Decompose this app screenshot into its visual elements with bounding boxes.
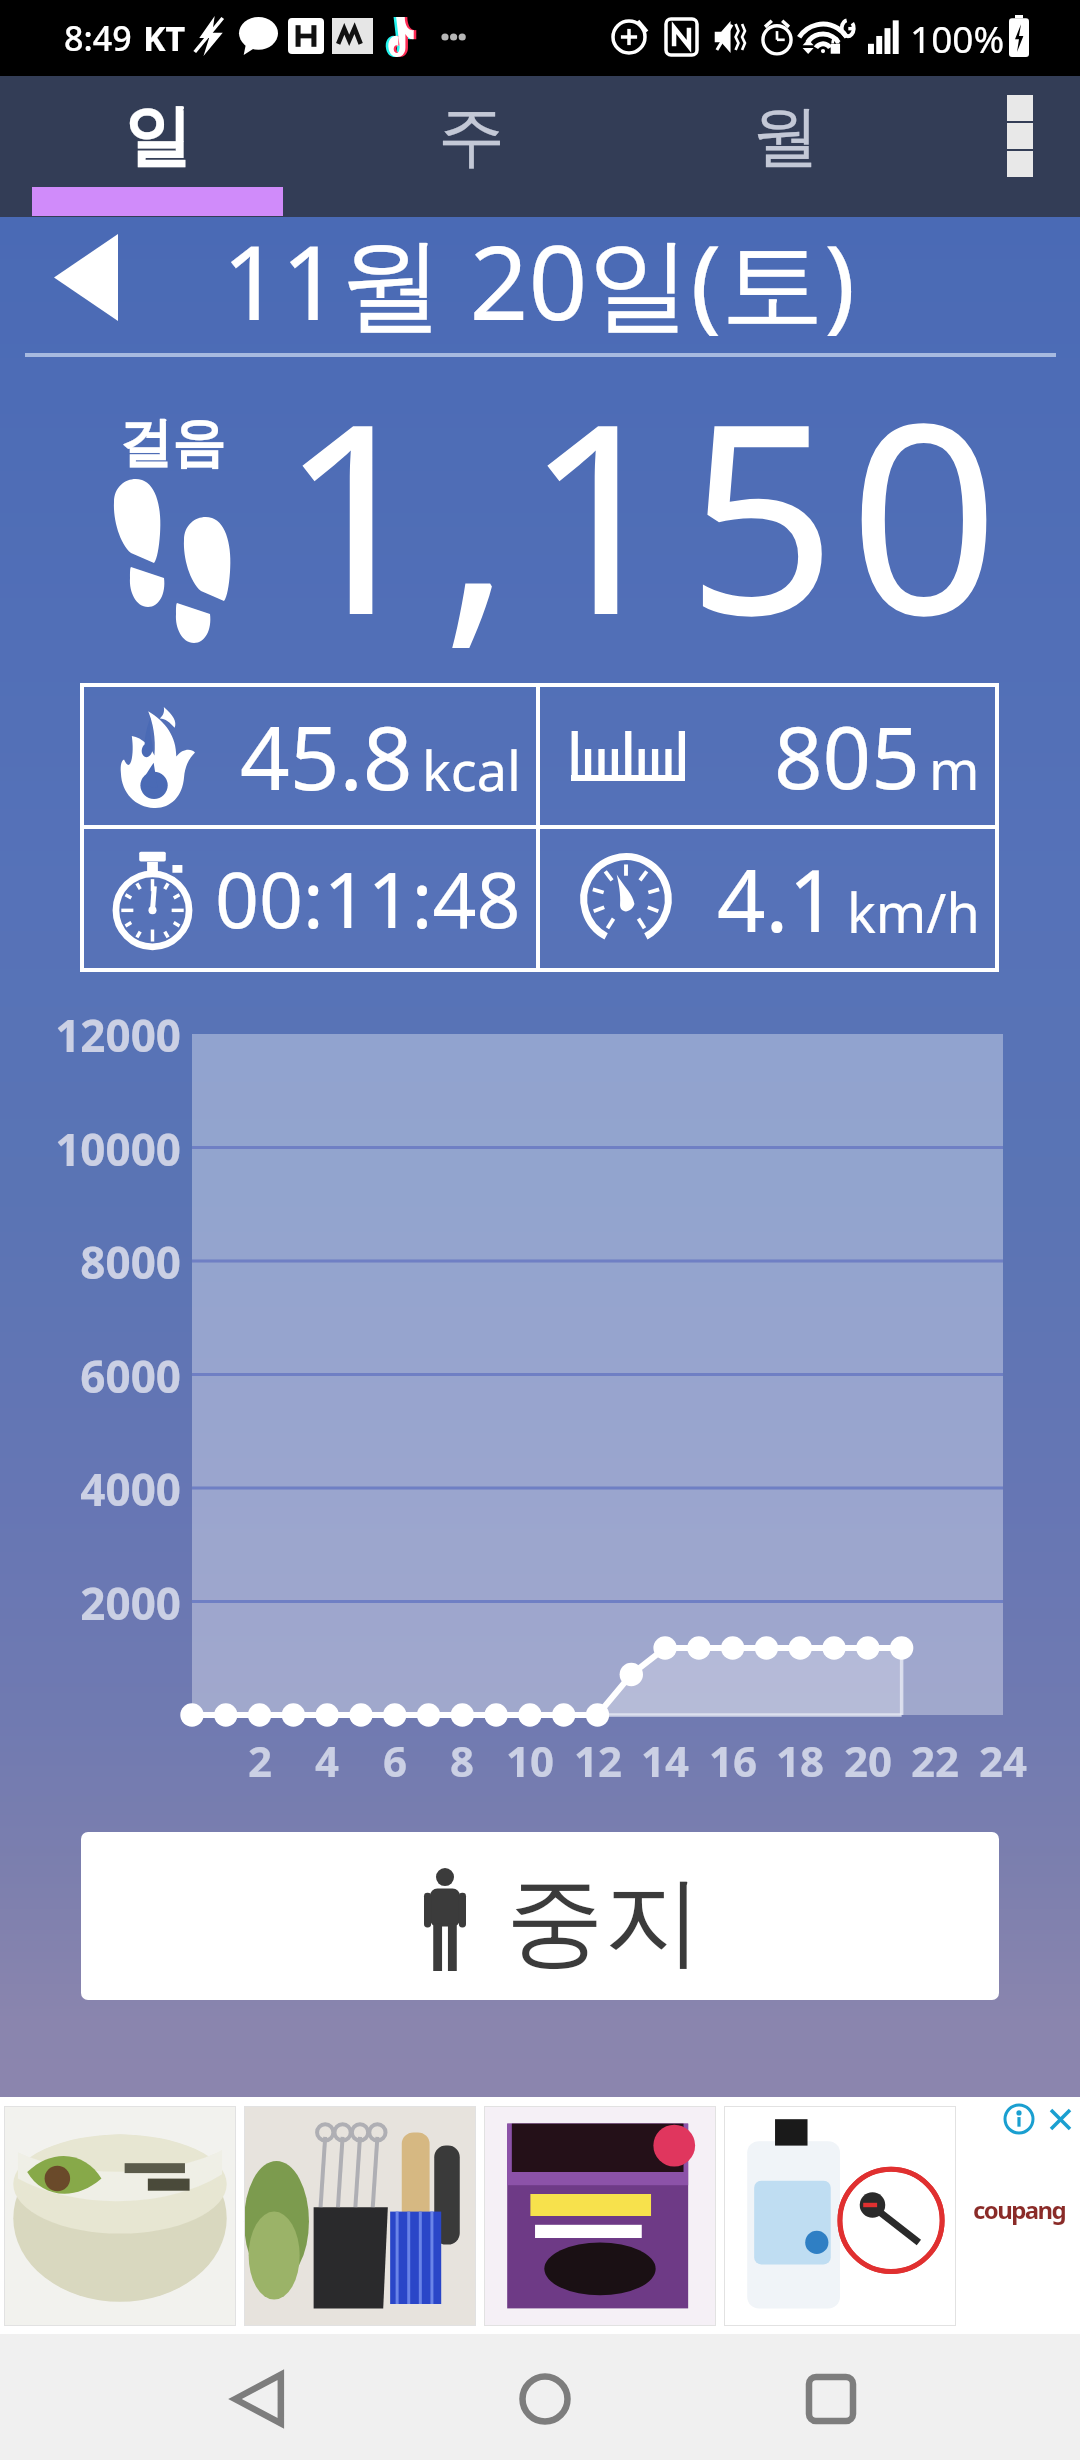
staticText: 45.8	[240, 697, 413, 815]
button[interactable]: Back	[204, 2344, 314, 2454]
button[interactable]: Ad 4	[724, 2106, 956, 2326]
staticText: 6000	[0, 1346, 181, 1406]
staticText: 1,150	[279, 333, 1012, 653]
staticText: 6	[361, 1732, 429, 1789]
staticText: 16	[699, 1732, 767, 1789]
button[interactable]: Home	[490, 2344, 600, 2454]
staticText: 10	[496, 1732, 564, 1789]
staticText: 걸음	[119, 410, 225, 477]
staticText: 중지	[506, 1861, 702, 1984]
button[interactable]: Previous day	[34, 225, 138, 329]
button[interactable]: More options	[942, 76, 1080, 196]
staticText: m	[929, 732, 980, 806]
staticText: kcal	[422, 733, 521, 807]
staticText: 18	[766, 1732, 834, 1789]
button[interactable]: 중지	[81, 1832, 999, 2000]
staticText: 00:11:48	[215, 846, 521, 951]
button[interactable]: 일	[0, 76, 314, 196]
button[interactable]: Ad 1	[4, 2106, 236, 2326]
staticText: 22	[901, 1732, 969, 1789]
staticText: 12	[564, 1732, 632, 1789]
staticText: 8:49	[64, 15, 132, 61]
staticText: 805	[774, 698, 920, 814]
staticText: 주	[438, 94, 505, 178]
staticText: 14	[631, 1732, 699, 1789]
staticText: 12000	[0, 1005, 181, 1065]
staticText: 8	[428, 1732, 496, 1789]
staticText: 2	[226, 1732, 294, 1789]
staticText: 일	[124, 94, 191, 178]
staticText: 8000	[0, 1232, 181, 1292]
button[interactable]: Ad 2	[244, 2106, 476, 2326]
button[interactable]: Ad info	[1003, 2103, 1035, 2135]
button[interactable]: Close ad	[1046, 2105, 1075, 2134]
staticText: 20	[834, 1732, 902, 1789]
staticText: 4.1	[717, 841, 838, 957]
button[interactable]: Recents	[776, 2344, 886, 2454]
staticText: 11월 20일(토)	[222, 210, 856, 350]
staticText: km/h	[847, 875, 980, 949]
staticText: 100%	[910, 13, 1005, 63]
staticText: 4000	[0, 1459, 181, 1519]
button[interactable]: 주	[314, 76, 628, 196]
staticText: 24	[969, 1732, 1037, 1789]
staticText: 4	[293, 1732, 361, 1789]
button[interactable]: 월	[628, 76, 942, 196]
staticText: KT	[143, 15, 186, 61]
staticText: coupang	[973, 2193, 1066, 2226]
button[interactable]: Ad 3	[484, 2106, 716, 2326]
staticText: 10000	[0, 1119, 181, 1179]
staticText: 월	[752, 94, 819, 178]
staticText: 2000	[0, 1573, 181, 1633]
